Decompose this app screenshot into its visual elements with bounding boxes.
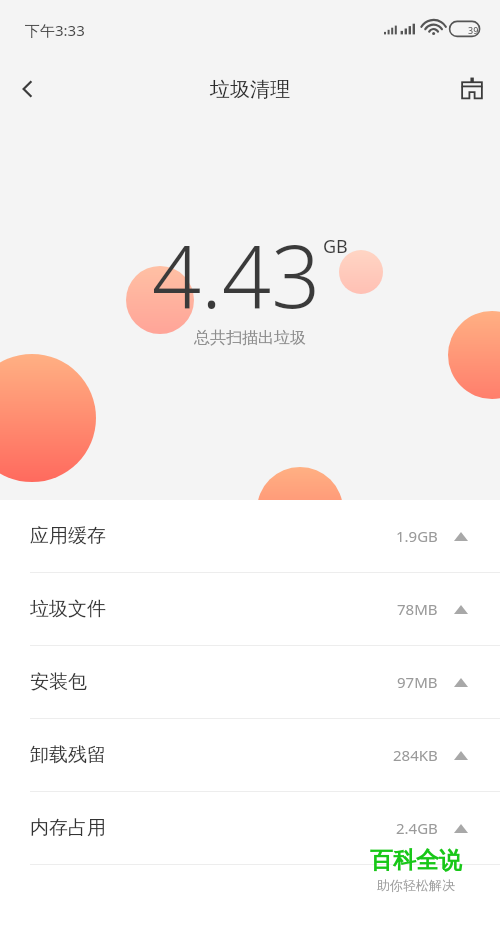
staticText: 284KB xyxy=(393,745,438,765)
button[interactable]: 卸载残留 xyxy=(0,719,500,791)
staticText: 2.4GB xyxy=(396,818,438,838)
staticText: 内存占用 xyxy=(30,816,106,840)
staticText: 1.9GB xyxy=(396,526,438,546)
staticText: 下午3:33 xyxy=(25,20,85,40)
staticText: GB xyxy=(323,234,348,259)
staticText: 垃圾清理 xyxy=(210,77,290,102)
button[interactable]: Clean xyxy=(444,61,500,117)
button[interactable]: 应用缓存 xyxy=(0,500,500,572)
staticText: 78MB xyxy=(397,599,438,619)
staticText: 安装包 xyxy=(30,670,87,694)
staticText: 卸载残留 xyxy=(30,743,106,767)
staticText: 39 xyxy=(468,24,479,36)
staticText: 4.43 xyxy=(152,216,321,333)
staticText: 助你轻松解决 xyxy=(377,877,455,893)
button[interactable]: 安装包 xyxy=(0,646,500,718)
staticText: 垃圾文件 xyxy=(30,597,106,621)
button[interactable]: 内存占用 xyxy=(0,792,500,864)
button[interactable]: 垃圾文件 xyxy=(0,573,500,645)
button[interactable]: Back xyxy=(0,61,56,117)
staticText: 应用缓存 xyxy=(30,524,106,548)
staticText: 总共扫描出垃圾 xyxy=(194,328,306,348)
staticText: 97MB xyxy=(397,672,438,692)
staticText: 百科全说 xyxy=(370,846,462,875)
